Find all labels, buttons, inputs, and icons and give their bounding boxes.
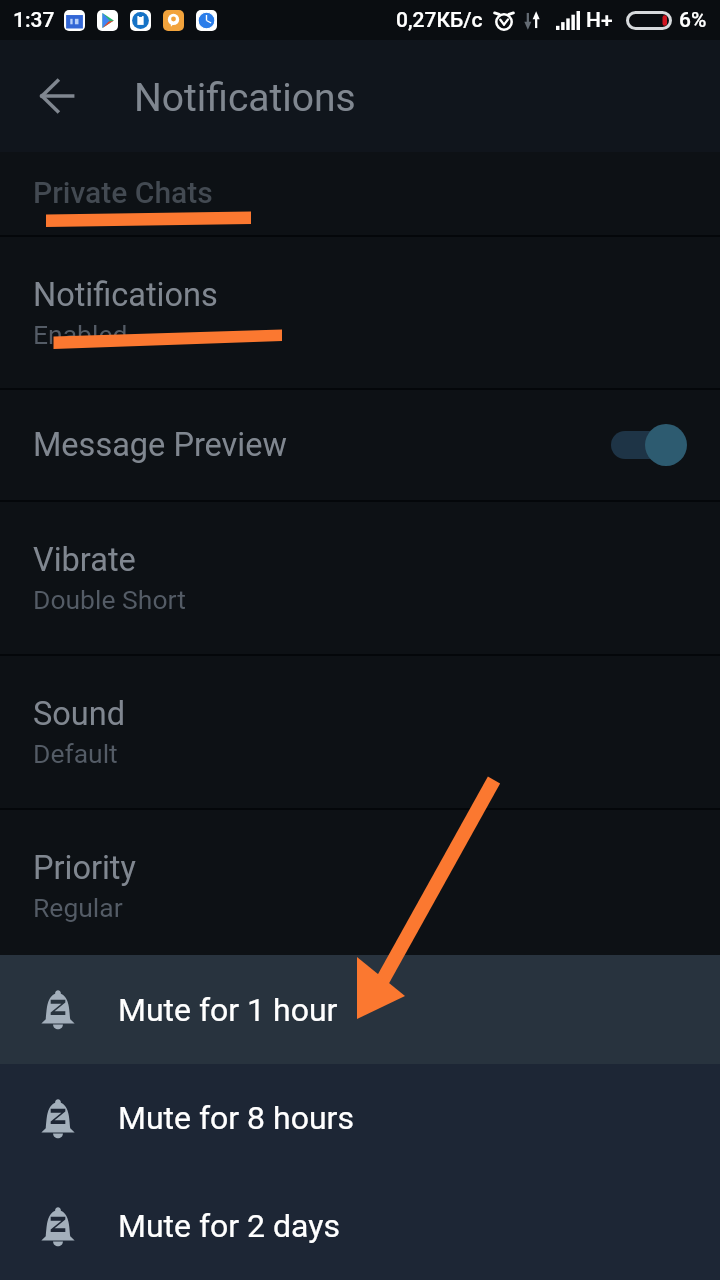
button[interactable]: Mute for 1 hour (0, 955, 720, 1064)
staticText: Double Short (33, 584, 186, 615)
button[interactable]: Message Preview (0, 390, 720, 500)
button[interactable]: Notifications (0, 237, 720, 388)
staticText: Message Preview (33, 426, 287, 464)
button[interactable]: Priority (0, 810, 720, 962)
staticText: Regular (33, 892, 123, 923)
button[interactable]: Sound (0, 656, 720, 808)
staticText: Priority (33, 849, 136, 887)
staticText: 6% (679, 8, 707, 33)
button[interactable]: Mute for 8 hours (0, 1064, 720, 1172)
button[interactable]: Vibrate (0, 502, 720, 654)
button[interactable]: Back (0, 40, 113, 152)
staticText: H+ (586, 8, 613, 33)
staticText: 0,27КБ/с (396, 8, 483, 33)
staticText: Mute for 2 days (118, 1207, 340, 1245)
staticText: 1:37 (13, 8, 55, 33)
staticText: Notifications (134, 75, 356, 121)
staticText: Mute for 8 hours (118, 1099, 354, 1137)
staticText: Default (33, 738, 118, 769)
staticText: Enabled (33, 319, 128, 350)
button[interactable]: Toggle Message Preview (611, 423, 687, 467)
button[interactable]: Mute for 2 days (0, 1172, 720, 1280)
staticText: Mute for 1 hour (118, 991, 338, 1029)
staticText: Vibrate (33, 541, 136, 579)
staticText: Notifications (33, 276, 218, 314)
staticText: Sound (33, 695, 126, 733)
staticText: Private Chats (33, 175, 213, 210)
